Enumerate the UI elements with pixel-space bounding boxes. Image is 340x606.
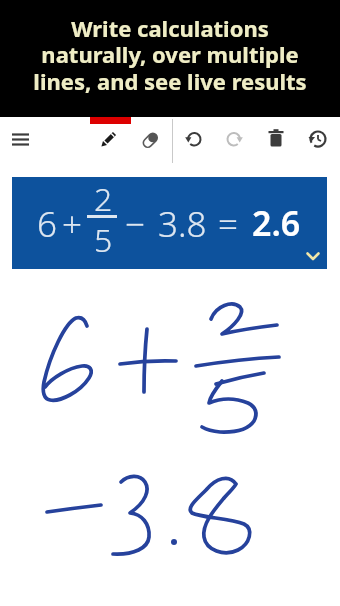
button[interactable]: [222, 127, 246, 151]
button[interactable]: [98, 128, 122, 152]
button[interactable]: [8, 128, 34, 152]
button[interactable]: [264, 127, 288, 151]
staticText: −: [125, 200, 145, 248]
button[interactable]: [138, 128, 162, 152]
staticText: =: [218, 200, 238, 248]
button[interactable]: [182, 127, 206, 151]
button[interactable]: 6: [12, 177, 327, 269]
staticText: 5: [94, 218, 113, 262]
staticText: 2.6: [252, 200, 301, 246]
staticText: 2: [94, 177, 113, 221]
button[interactable]: [306, 127, 330, 151]
staticText: 3.8: [158, 200, 207, 248]
staticText: +: [62, 200, 82, 248]
staticText: Write calculations naturally, over multi…: [33, 13, 307, 96]
staticText: 6: [37, 200, 57, 248]
